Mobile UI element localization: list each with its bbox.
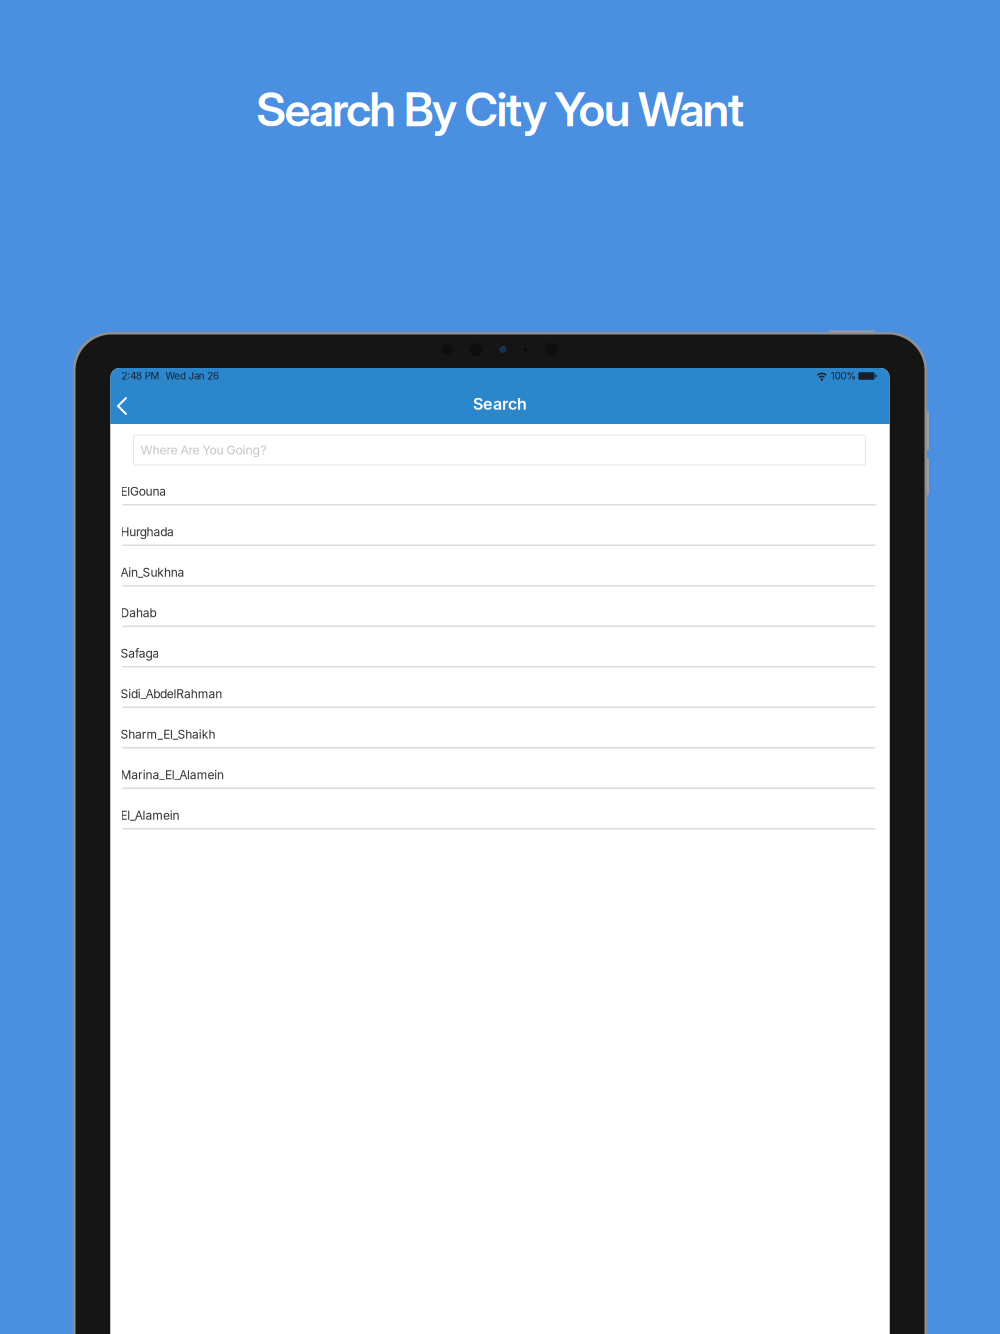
button[interactable]: Sidi_AbdelRahman	[110, 681, 889, 721]
staticText: Search	[473, 394, 527, 414]
staticText: Sharm_El_Shaikh	[120, 727, 215, 742]
button[interactable]: ElGouna	[110, 478, 889, 519]
button[interactable]: Sharm_El_Shaikh	[110, 721, 889, 762]
staticText: El_Alamein	[120, 808, 179, 823]
button[interactable]: Marina_El_Alamein	[110, 762, 889, 802]
staticText: Marina_El_Alamein	[120, 768, 224, 782]
button[interactable]: Ain_Sukhna	[110, 559, 889, 600]
staticText: Ain_Sukhna	[120, 565, 184, 580]
staticText: Sidi_AbdelRahman	[120, 687, 222, 701]
staticText: Where Are You Going?	[140, 443, 266, 457]
button[interactable]: Dahab	[110, 600, 889, 640]
button[interactable]: Back	[110, 387, 134, 421]
button[interactable]: Hurghada	[110, 519, 889, 559]
button[interactable]: Safaga	[110, 640, 889, 681]
button[interactable]: Where Are You Going?	[133, 435, 865, 465]
staticText: Search By City You Want	[256, 81, 744, 137]
staticText: Hurghada	[120, 525, 174, 539]
button[interactable]: El_Alamein	[110, 802, 889, 843]
staticText: Dahab	[120, 606, 157, 620]
staticText: Safaga	[120, 646, 159, 661]
staticText: 100%	[831, 370, 856, 382]
staticText: ElGouna	[120, 484, 166, 499]
staticText: 2:48 PM	[121, 370, 160, 382]
staticText: Wed Jan 26	[166, 370, 219, 382]
